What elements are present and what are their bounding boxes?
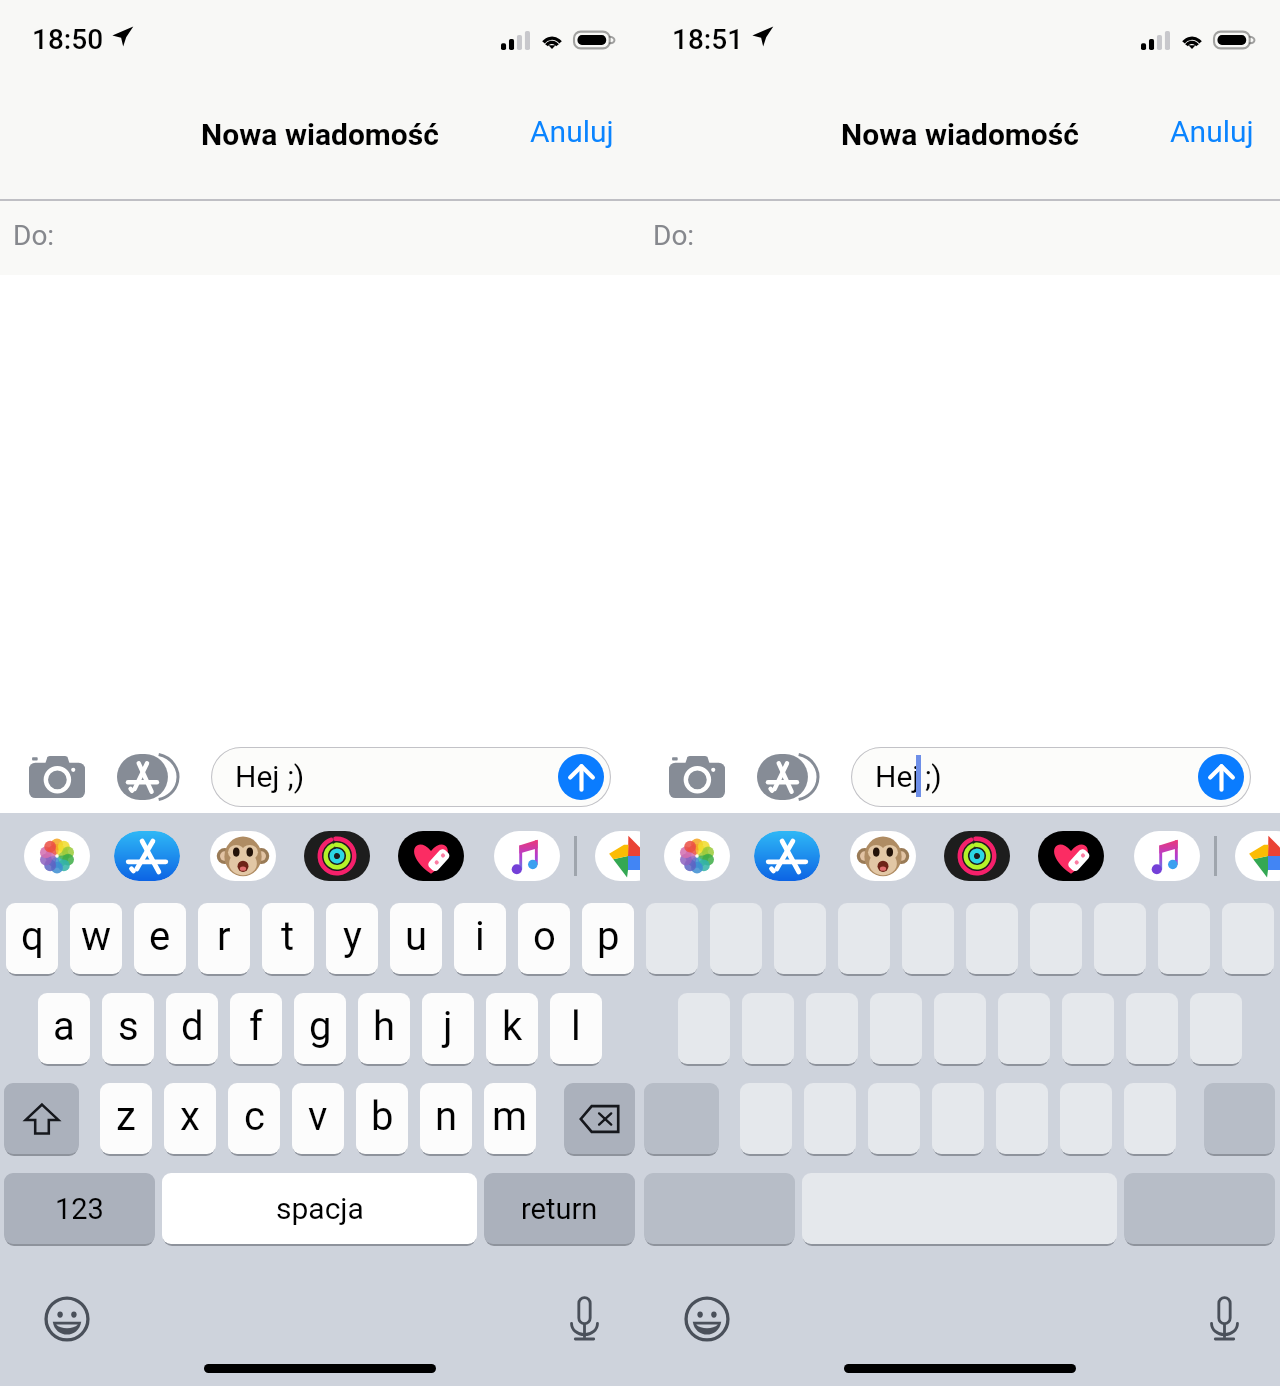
button[interactable]: b bbox=[356, 1083, 408, 1154]
button[interactable]: p bbox=[582, 903, 634, 974]
button[interactable] bbox=[646, 903, 698, 974]
button[interactable]: Dictate bbox=[1194, 1288, 1255, 1349]
button[interactable]: Emoji bbox=[36, 1288, 97, 1349]
button[interactable]: Google Photos bbox=[1235, 831, 1280, 881]
button[interactable] bbox=[838, 903, 890, 974]
button[interactable] bbox=[1094, 903, 1146, 974]
button[interactable]: Anuluj bbox=[530, 114, 614, 149]
button[interactable]: m bbox=[484, 1083, 536, 1154]
button[interactable]: l bbox=[550, 993, 602, 1064]
button[interactable] bbox=[1158, 903, 1210, 974]
button[interactable] bbox=[804, 1083, 856, 1154]
button[interactable]: Anuluj bbox=[1170, 114, 1254, 149]
button[interactable]: Health bbox=[398, 831, 464, 881]
button[interactable]: v bbox=[292, 1083, 344, 1154]
button[interactable]: Camera bbox=[22, 742, 92, 812]
button[interactable]: u bbox=[390, 903, 442, 974]
button[interactable]: e bbox=[134, 903, 186, 974]
button[interactable]: q bbox=[6, 903, 58, 974]
button[interactable]: Send bbox=[1198, 754, 1244, 800]
button[interactable]: c bbox=[228, 1083, 280, 1154]
staticText: Anuluj bbox=[1170, 114, 1254, 149]
button[interactable] bbox=[806, 993, 858, 1064]
button[interactable]: z bbox=[100, 1083, 152, 1154]
button[interactable]: t bbox=[262, 903, 314, 974]
button[interactable]: Do: bbox=[0, 201, 640, 275]
button[interactable] bbox=[902, 903, 954, 974]
button[interactable] bbox=[870, 993, 922, 1064]
button[interactable]: App Store bbox=[754, 831, 820, 881]
button[interactable]: Shift bbox=[4, 1083, 79, 1154]
button[interactable] bbox=[932, 1083, 984, 1154]
button[interactable] bbox=[868, 1083, 920, 1154]
button[interactable] bbox=[1062, 993, 1114, 1064]
button[interactable] bbox=[998, 993, 1050, 1064]
button[interactable] bbox=[966, 903, 1018, 974]
button[interactable]: Dictate bbox=[554, 1288, 615, 1349]
button[interactable]: Camera bbox=[662, 742, 732, 812]
staticText: z bbox=[116, 1093, 136, 1140]
button[interactable] bbox=[1124, 1083, 1176, 1154]
button[interactable]: Send bbox=[558, 754, 604, 800]
staticText: w bbox=[81, 913, 112, 960]
button[interactable]: Backspace bbox=[564, 1083, 635, 1154]
button[interactable]: x bbox=[164, 1083, 216, 1154]
button[interactable]: App Store bbox=[114, 831, 180, 881]
button[interactable]: Memoji bbox=[210, 831, 276, 881]
button[interactable]: Activity bbox=[944, 831, 1010, 881]
button[interactable]: Music bbox=[1134, 831, 1200, 881]
button[interactable] bbox=[742, 993, 794, 1064]
button[interactable] bbox=[774, 903, 826, 974]
button[interactable] bbox=[1060, 1083, 1112, 1154]
button[interactable]: s bbox=[102, 993, 154, 1064]
button[interactable] bbox=[1126, 993, 1178, 1064]
button[interactable]: Emoji bbox=[676, 1288, 737, 1349]
button[interactable]: h bbox=[358, 993, 410, 1064]
button[interactable]: Photos bbox=[664, 831, 730, 881]
button[interactable]: r bbox=[198, 903, 250, 974]
button[interactable]: Do: bbox=[640, 201, 1280, 275]
button[interactable]: w bbox=[70, 903, 122, 974]
button[interactable]: d bbox=[166, 993, 218, 1064]
button[interactable]: Photos bbox=[24, 831, 90, 881]
staticText: v bbox=[308, 1093, 328, 1140]
button[interactable] bbox=[996, 1083, 1048, 1154]
button[interactable] bbox=[1222, 903, 1274, 974]
button[interactable]: Music bbox=[494, 831, 560, 881]
button[interactable] bbox=[1030, 903, 1082, 974]
button[interactable]: Activity bbox=[304, 831, 370, 881]
button[interactable] bbox=[710, 903, 762, 974]
staticText: b bbox=[371, 1093, 394, 1140]
button[interactable]: return bbox=[484, 1173, 635, 1244]
button[interactable]: j bbox=[422, 993, 474, 1064]
button[interactable] bbox=[678, 993, 730, 1064]
staticText: 18:50 bbox=[32, 23, 104, 56]
button[interactable]: o bbox=[518, 903, 570, 974]
button[interactable]: g bbox=[294, 993, 346, 1064]
button[interactable]: i bbox=[454, 903, 506, 974]
button[interactable]: n bbox=[420, 1083, 472, 1154]
button[interactable]: k bbox=[486, 993, 538, 1064]
button[interactable] bbox=[934, 993, 986, 1064]
button[interactable]: a bbox=[38, 993, 90, 1064]
staticText: p bbox=[597, 913, 620, 960]
button[interactable]: 123 bbox=[4, 1173, 155, 1244]
button[interactable]: f bbox=[230, 993, 282, 1064]
button[interactable]: Hej bbox=[211, 747, 611, 807]
button[interactable]: Google Photos bbox=[595, 831, 661, 881]
button[interactable]: Health bbox=[1038, 831, 1104, 881]
button[interactable]: Memoji bbox=[850, 831, 916, 881]
button[interactable]: App Store bbox=[112, 742, 182, 812]
button[interactable]: spacja bbox=[162, 1173, 477, 1244]
button[interactable]: App Store bbox=[752, 742, 822, 812]
staticText: Do: bbox=[13, 219, 55, 252]
button[interactable] bbox=[740, 1083, 792, 1154]
button[interactable]: y bbox=[326, 903, 378, 974]
button[interactable]: Hej bbox=[851, 747, 1251, 807]
button[interactable] bbox=[1190, 993, 1242, 1064]
